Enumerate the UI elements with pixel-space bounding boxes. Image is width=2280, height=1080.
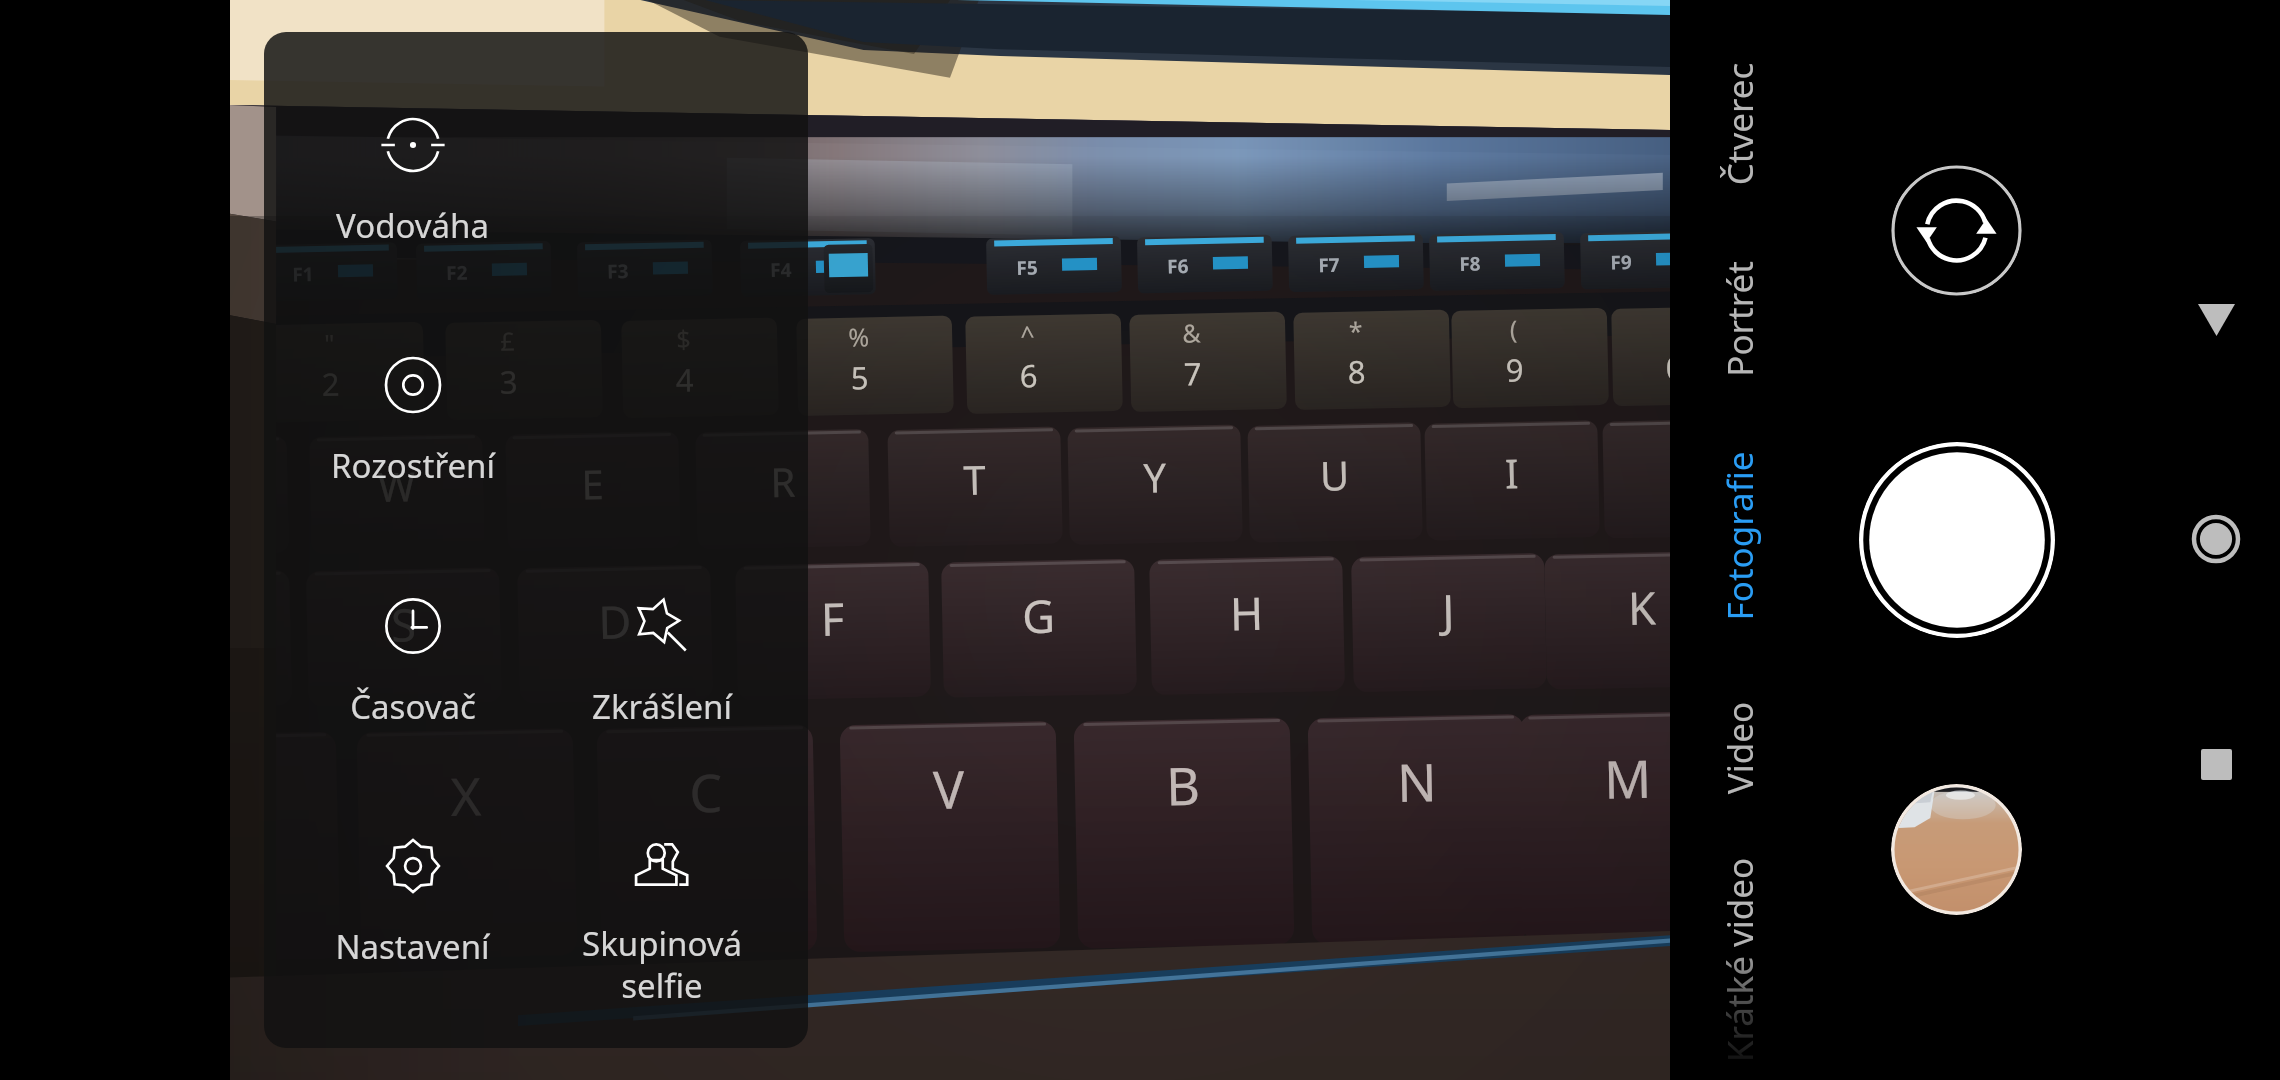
staticText: Portrét — [1716, 119, 1764, 519]
staticText: Krátké video — [1716, 760, 1764, 1080]
staticText: Video — [1716, 548, 1764, 948]
button[interactable]: Vodováha — [288, 109, 537, 248]
button[interactable]: Časovač — [288, 590, 537, 729]
button[interactable]: Gallery — [1891, 784, 2022, 915]
staticText: Časovač — [350, 684, 476, 729]
staticText: Čtverec — [1716, 0, 1764, 324]
button[interactable]: Rozostření — [288, 349, 537, 488]
staticText: Nastavení — [335, 924, 490, 969]
button[interactable]: Krátké video — [1690, 840, 1790, 1080]
staticText: Fotografie — [1716, 336, 1764, 736]
button[interactable]: Portrét — [1690, 189, 1790, 449]
button[interactable]: Fotografie — [1690, 406, 1790, 666]
button[interactable]: Recent apps — [2166, 714, 2266, 814]
staticText: Vodováha — [336, 203, 489, 248]
button[interactable]: Čtverec — [1690, 0, 1790, 254]
staticText: Rozostření — [331, 443, 495, 488]
staticText: Zkrášlení — [592, 684, 732, 729]
button[interactable]: Take photo — [1859, 442, 2055, 638]
button[interactable]: Nastavení — [288, 830, 537, 969]
button[interactable]: Skupinová selfie — [537, 827, 786, 1008]
staticText: Skupinová selfie — [582, 921, 742, 1008]
button[interactable]: Back — [2166, 270, 2266, 370]
button[interactable]: Home — [2166, 489, 2266, 589]
button[interactable]: Zkrášlení — [537, 590, 786, 729]
button[interactable]: Video — [1690, 618, 1790, 878]
button[interactable]: Switch camera — [1891, 165, 2022, 296]
